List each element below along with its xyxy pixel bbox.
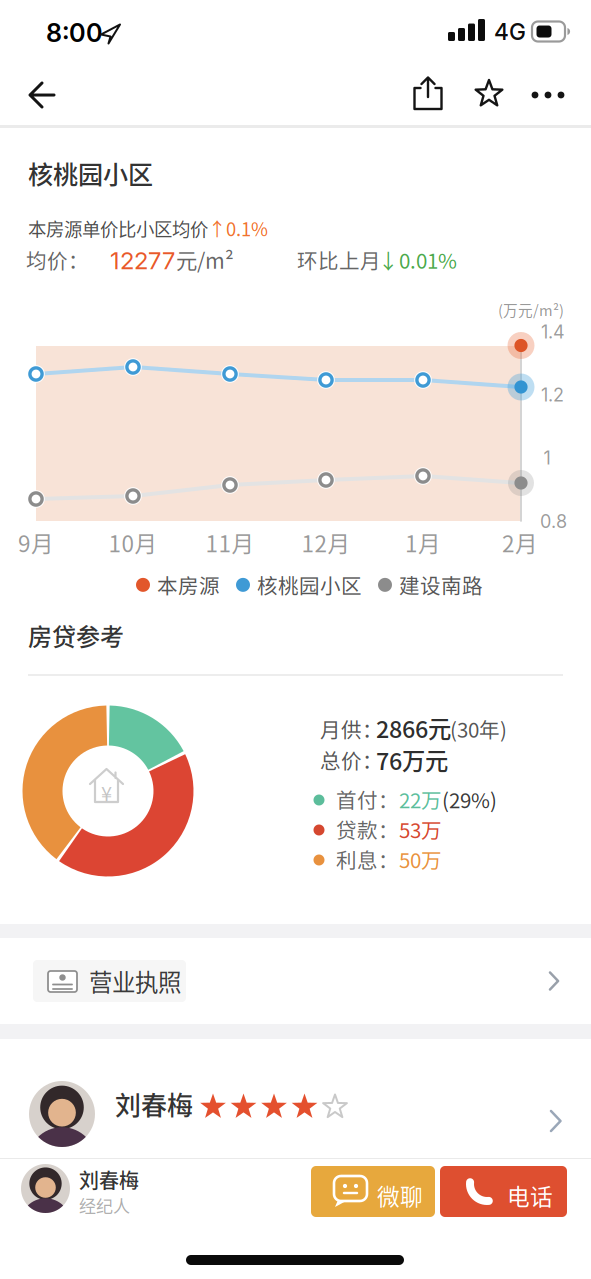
staticText: 4G (494, 18, 526, 45)
staticText: 房贷参考 (28, 618, 124, 653)
staticText: 1 (543, 447, 550, 469)
staticText: (30年) (450, 714, 507, 744)
staticText: 元/m² (176, 244, 234, 275)
staticText: 2月 (502, 526, 538, 559)
staticText: 本房源 (157, 570, 220, 600)
staticText: ↓0.01% (378, 245, 457, 275)
staticText: 核桃园小区 (28, 155, 153, 191)
button[interactable]: Back (26, 77, 62, 113)
button[interactable]: 电话 (440, 1166, 567, 1217)
staticText: 1.4 (541, 321, 565, 343)
staticText: 环比上月 (297, 245, 381, 275)
staticText: 0.8 (540, 510, 567, 532)
button[interactable]: 刘春梅 (10, 1161, 160, 1219)
staticText: 9月 (18, 526, 54, 559)
staticText: 53万 (399, 814, 442, 844)
button[interactable]: Favorite (472, 76, 506, 112)
staticText: 11月 (205, 526, 254, 559)
staticText: 均价： (26, 245, 89, 275)
staticText: 1.2 (541, 384, 564, 406)
staticText: 50万 (399, 844, 442, 874)
staticText: 总价： (320, 745, 383, 775)
staticText: 12277 (110, 246, 175, 275)
button[interactable]: 微聊 (311, 1166, 435, 1217)
staticText: 电话 (507, 1179, 553, 1212)
staticText: 76万元 (376, 743, 448, 777)
staticText: 本房源单价比小区均价 (28, 215, 208, 242)
staticText: 利息： (336, 844, 399, 874)
staticText: 月供： (320, 714, 383, 744)
button[interactable]: 营业执照 (0, 956, 591, 1010)
staticText: 1月 (405, 526, 441, 559)
staticText: 22万 (399, 784, 442, 814)
staticText: 微聊 (377, 1179, 423, 1212)
staticText: 12月 (301, 526, 350, 559)
staticText: 10月 (108, 526, 157, 559)
staticText: 8:00 (46, 17, 103, 48)
staticText: 首付： (336, 784, 399, 814)
staticText: (29%) (442, 784, 497, 814)
button[interactable]: 刘春梅 (0, 1076, 591, 1158)
staticText: 2866元 (376, 711, 451, 745)
staticText: 经纪人 (79, 1193, 130, 1218)
staticText: 贷款： (336, 814, 399, 844)
staticText: 营业执照 (89, 964, 181, 998)
staticText: 核桃园小区 (257, 570, 362, 600)
staticText: ↑0.1% (208, 215, 268, 242)
staticText: ¥ (101, 778, 112, 807)
button[interactable]: Share (411, 76, 445, 112)
staticText: 建设南路 (399, 570, 483, 600)
button[interactable]: More (530, 86, 566, 104)
staticText: 刘春梅 (115, 1085, 193, 1123)
staticText: 刘春梅 (79, 1165, 139, 1194)
staticText: (万元/m²) (498, 299, 564, 320)
